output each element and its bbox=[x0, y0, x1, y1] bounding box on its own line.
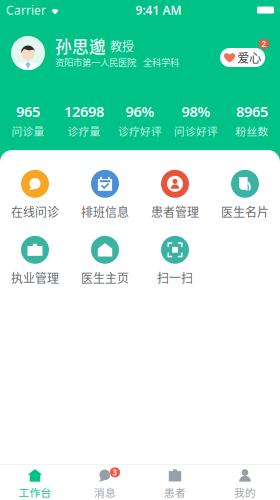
button[interactable]: 患者管理 bbox=[140, 172, 210, 218]
staticText: 我的 bbox=[234, 484, 256, 500]
button[interactable]: 排班信息 bbox=[70, 172, 140, 218]
button[interactable]: 在线问诊 bbox=[0, 172, 70, 218]
button[interactable]: 医生主页 bbox=[70, 238, 140, 284]
staticText: 全科学科 bbox=[143, 55, 179, 69]
staticText: 诊疗量 bbox=[67, 123, 100, 138]
staticText: 患者 bbox=[164, 484, 186, 500]
staticText: 3 bbox=[112, 467, 117, 478]
button[interactable]: 3 bbox=[70, 470, 140, 499]
staticText: 诊疗好评 bbox=[118, 123, 162, 138]
staticText: 问诊好评 bbox=[174, 123, 218, 138]
button[interactable]: 执业管理 bbox=[0, 238, 70, 284]
staticText: Carrier bbox=[6, 2, 46, 18]
staticText: 2 bbox=[261, 39, 266, 49]
staticText: 消息 bbox=[94, 484, 116, 500]
staticText: 98% bbox=[181, 101, 210, 121]
button[interactable]: 爱心 bbox=[220, 39, 269, 67]
staticText: 在线问诊 bbox=[11, 203, 59, 220]
button[interactable]: 扫一扫 bbox=[140, 238, 210, 284]
staticText: 965 bbox=[16, 101, 40, 121]
staticText: 12698 bbox=[64, 101, 104, 121]
staticText: 8965 bbox=[236, 101, 268, 121]
staticText: 扫一扫 bbox=[157, 269, 193, 286]
button[interactable]: 工作台 bbox=[0, 470, 70, 499]
staticText: 工作台 bbox=[18, 484, 51, 500]
staticText: 资阳市第一人民医院 bbox=[55, 55, 136, 69]
staticText: 医生名片 bbox=[221, 203, 269, 220]
staticText: 96% bbox=[125, 101, 154, 121]
staticText: 执业管理 bbox=[11, 269, 59, 286]
staticText: 患者管理 bbox=[151, 203, 199, 220]
staticText: 孙思邈 bbox=[55, 34, 106, 58]
staticText: 粉丝数 bbox=[235, 123, 268, 138]
button[interactable]: 患者 bbox=[140, 470, 210, 499]
staticText: 问诊量 bbox=[11, 123, 44, 138]
staticText: 9:41 AM bbox=[135, 2, 181, 18]
staticText: 教授 bbox=[110, 37, 134, 55]
staticText: 医生主页 bbox=[81, 269, 129, 286]
staticText: 爱心 bbox=[237, 49, 261, 66]
button[interactable]: 医生名片 bbox=[210, 172, 280, 218]
staticText: 排班信息 bbox=[81, 203, 129, 220]
button[interactable]: 我的 bbox=[210, 470, 280, 499]
